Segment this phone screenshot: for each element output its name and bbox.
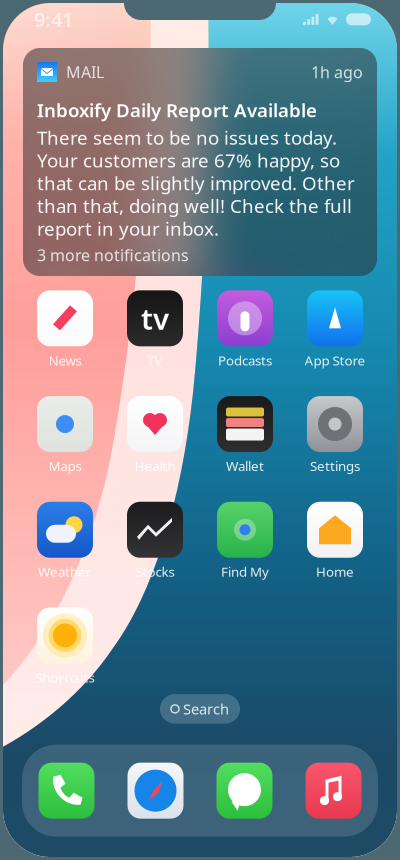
button[interactable]: Weather — [20, 502, 110, 580]
staticText: than that, doing well! Check the full — [37, 193, 352, 218]
staticText: MAIL — [66, 61, 104, 83]
staticText: Maps — [48, 457, 81, 475]
button[interactable]: Podcasts — [200, 290, 290, 369]
button[interactable]: Messages — [200, 745, 289, 837]
button[interactable]: App Store — [290, 290, 380, 369]
button[interactable]: Maps — [20, 396, 110, 475]
button[interactable]: tv — [110, 290, 200, 369]
staticText: Stocks — [135, 563, 174, 580]
staticText: that can be slightly improved. Other — [37, 171, 355, 195]
button[interactable]: Music — [289, 745, 378, 837]
staticText: News — [48, 351, 81, 369]
button[interactable]: News — [20, 290, 110, 369]
button[interactable]: Stocks — [110, 502, 200, 580]
staticText: Inboxify Daily Report Available — [37, 98, 317, 122]
staticText: 1h ago — [311, 61, 363, 83]
staticText: 3 more notifications — [37, 244, 189, 266]
button[interactable]: Home — [290, 502, 380, 580]
staticText: Your customers are 67% happy, so — [37, 148, 340, 173]
button[interactable]: MAIL — [23, 48, 377, 276]
staticText: App Store — [304, 351, 365, 369]
staticText: Podcasts — [218, 351, 272, 369]
button[interactable]: Search — [160, 694, 240, 724]
button[interactable]: Phone — [22, 745, 111, 837]
staticText: Settings — [310, 457, 360, 475]
button[interactable]: Shortcuts — [20, 607, 110, 686]
staticText: Weather — [38, 563, 92, 580]
staticText: 9:41 — [34, 6, 73, 33]
staticText: Search — [183, 699, 229, 719]
button[interactable]: Wallet — [200, 396, 290, 475]
staticText: There seem to be no issues today. — [37, 125, 337, 150]
button[interactable]: Safari — [111, 745, 200, 837]
button[interactable]: Find My — [200, 502, 290, 580]
staticText: Shortcuts — [35, 668, 94, 686]
staticText: Find My — [221, 563, 269, 580]
staticText: Health — [134, 457, 175, 475]
staticText: Wallet — [226, 457, 264, 475]
button[interactable]: Settings — [290, 396, 380, 475]
staticText: TV — [147, 351, 162, 369]
staticText: tv — [141, 299, 169, 338]
staticText: report in your inbox. — [37, 216, 219, 241]
staticText: Home — [316, 563, 354, 580]
button[interactable]: Health — [110, 396, 200, 475]
